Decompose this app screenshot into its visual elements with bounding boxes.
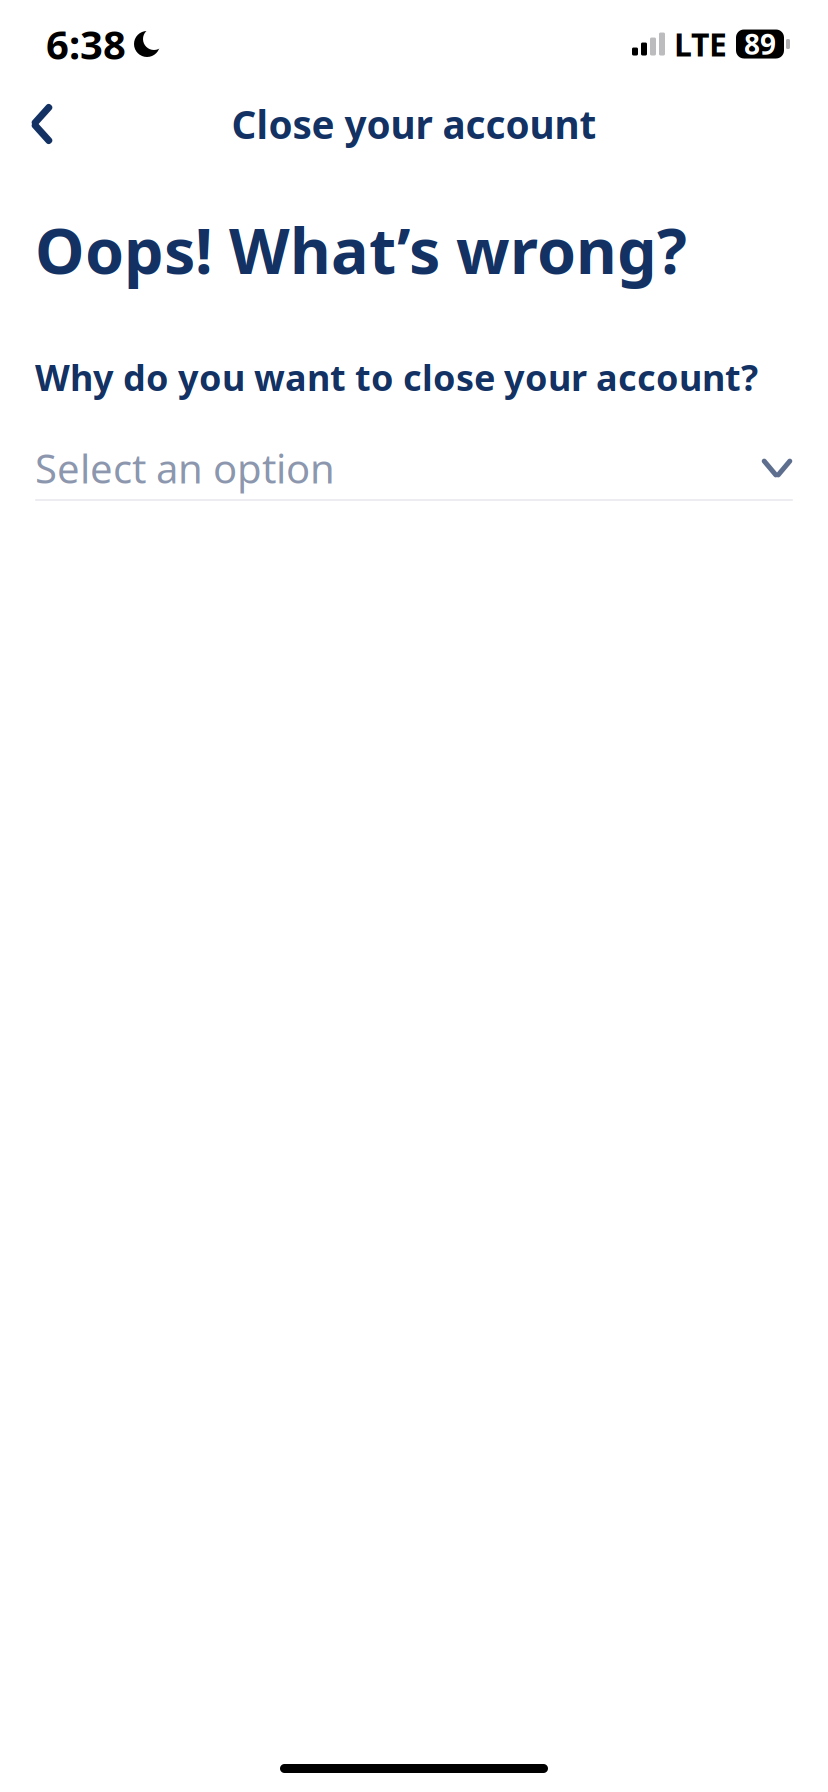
staticText: 89: [744, 25, 776, 63]
staticText: Select an option: [35, 441, 335, 495]
button[interactable]: Back: [14, 96, 70, 152]
staticText: Oops! What’s wrong?: [35, 208, 687, 291]
staticText: LTE: [674, 23, 727, 65]
staticText: Close your account: [231, 98, 596, 150]
staticText: Why do you want to close your account?: [35, 353, 758, 401]
staticText: 6:38: [46, 17, 126, 70]
button[interactable]: Select an option: [35, 437, 793, 501]
